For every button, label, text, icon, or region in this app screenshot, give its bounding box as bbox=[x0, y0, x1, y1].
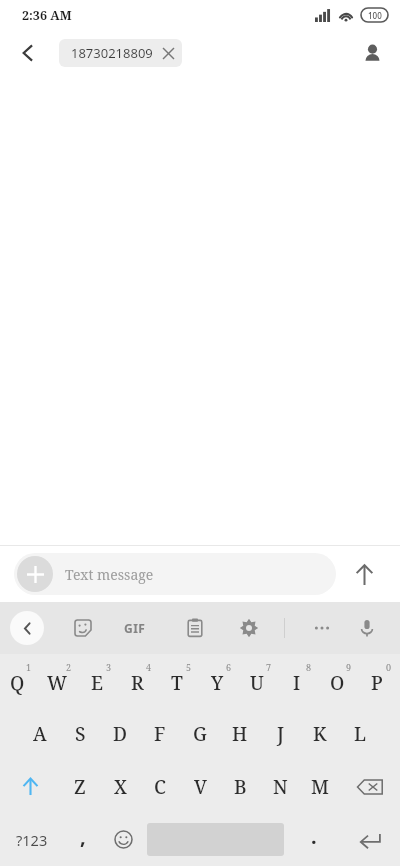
button[interactable]: . bbox=[288, 813, 340, 866]
staticText: M bbox=[311, 774, 329, 800]
button[interactable]: , bbox=[63, 813, 103, 866]
staticText: 1 bbox=[26, 661, 32, 673]
staticText: . bbox=[311, 823, 317, 850]
button[interactable]: Clipboard bbox=[176, 609, 214, 647]
staticText: 3 bbox=[106, 661, 112, 673]
staticText: O bbox=[330, 670, 345, 696]
button[interactable]: F bbox=[140, 707, 180, 760]
staticText: B bbox=[234, 774, 247, 800]
button[interactable]: W bbox=[40, 654, 80, 707]
button[interactable]: R bbox=[120, 654, 160, 707]
button[interactable]: G bbox=[180, 707, 220, 760]
button[interactable]: J bbox=[260, 707, 300, 760]
staticText: J bbox=[277, 721, 284, 747]
staticText: G bbox=[193, 721, 207, 747]
staticText: W bbox=[47, 670, 68, 696]
staticText: I bbox=[293, 670, 301, 696]
staticText: A bbox=[33, 721, 47, 747]
staticText: , bbox=[80, 823, 86, 850]
button[interactable]: Z bbox=[60, 760, 100, 813]
staticText: 6 bbox=[226, 661, 232, 673]
staticText: 2 bbox=[66, 661, 72, 673]
button[interactable]: X bbox=[100, 760, 140, 813]
button[interactable]: Stickers bbox=[64, 609, 102, 647]
staticText: V bbox=[194, 774, 207, 800]
staticText: 2:36 AM bbox=[22, 7, 72, 24]
button[interactable]: C bbox=[140, 760, 180, 813]
staticText: Z bbox=[74, 774, 86, 800]
button[interactable]: Settings bbox=[230, 609, 268, 647]
button[interactable]: Back bbox=[8, 33, 48, 73]
staticText: U bbox=[250, 670, 264, 696]
staticText: L bbox=[354, 721, 367, 747]
staticText: GIF bbox=[124, 620, 146, 636]
button[interactable]: N bbox=[260, 760, 300, 813]
staticText: ?123 bbox=[16, 830, 48, 850]
button[interactable]: Collapse toolbar bbox=[10, 611, 44, 645]
staticText: 8 bbox=[306, 661, 312, 673]
staticText: 7 bbox=[266, 661, 272, 673]
staticText: 0 bbox=[386, 661, 392, 673]
staticText: 5 bbox=[186, 661, 192, 673]
button[interactable]: Backspace bbox=[340, 760, 400, 813]
button[interactable]: 18730218809 bbox=[59, 39, 182, 67]
staticText: C bbox=[154, 774, 166, 800]
button[interactable]: A bbox=[20, 707, 60, 760]
button[interactable]: O bbox=[320, 654, 360, 707]
button[interactable]: Voice input bbox=[348, 609, 386, 647]
button[interactable]: P bbox=[360, 654, 400, 707]
button[interactable]: Contact details bbox=[352, 33, 392, 73]
staticText: 9 bbox=[346, 661, 352, 673]
button[interactable]: Send bbox=[342, 552, 386, 596]
staticText: Text message bbox=[65, 565, 154, 584]
staticText: N bbox=[273, 774, 288, 800]
staticText: Y bbox=[211, 670, 224, 696]
button[interactable]: Attach bbox=[17, 556, 53, 592]
button[interactable]: V bbox=[180, 760, 220, 813]
button[interactable]: GIF bbox=[116, 609, 154, 647]
button[interactable]: I bbox=[280, 654, 320, 707]
button[interactable]: Attach bbox=[14, 553, 336, 595]
staticText: K bbox=[313, 721, 327, 747]
staticText: P bbox=[371, 670, 383, 696]
button[interactable]: H bbox=[220, 707, 260, 760]
button[interactable]: T bbox=[160, 654, 200, 707]
button[interactable]: Emoji bbox=[103, 813, 143, 866]
staticText: X bbox=[114, 774, 127, 800]
button[interactable]: U bbox=[240, 654, 280, 707]
staticText: D bbox=[113, 721, 128, 747]
button[interactable]: Enter bbox=[340, 813, 400, 866]
button[interactable]: More options bbox=[303, 609, 341, 647]
button[interactable]: Y bbox=[200, 654, 240, 707]
button[interactable]: M bbox=[300, 760, 340, 813]
staticText: S bbox=[75, 721, 86, 747]
staticText: H bbox=[232, 721, 248, 747]
button[interactable]: L bbox=[340, 707, 380, 760]
button[interactable]: ?123 bbox=[0, 813, 63, 866]
staticText: Q bbox=[10, 670, 25, 696]
button[interactable]: E bbox=[80, 654, 120, 707]
button[interactable]: K bbox=[300, 707, 340, 760]
staticText: 4 bbox=[146, 661, 152, 673]
staticText: R bbox=[131, 670, 144, 696]
button[interactable]: Shift bbox=[0, 760, 60, 813]
staticText: E bbox=[91, 670, 103, 696]
button[interactable]: B bbox=[220, 760, 260, 813]
staticText: 100 bbox=[368, 10, 382, 21]
staticText: T bbox=[171, 670, 183, 696]
button[interactable]: S bbox=[60, 707, 100, 760]
staticText: F bbox=[154, 721, 166, 747]
staticText: 18730218809 bbox=[71, 44, 153, 62]
button[interactable]: Q bbox=[0, 654, 40, 707]
button[interactable]: D bbox=[100, 707, 140, 760]
